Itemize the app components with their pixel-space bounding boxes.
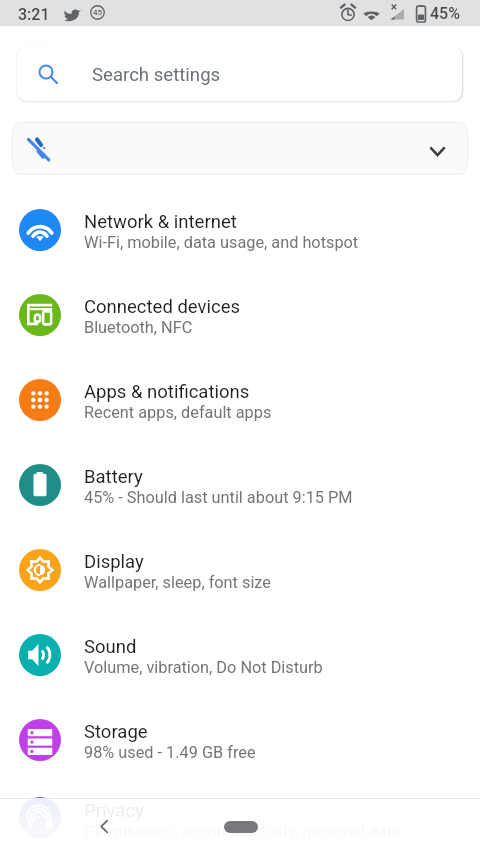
staticText: 3:21: [18, 5, 50, 24]
button[interactable]: Back: [88, 810, 120, 842]
staticText: Wallpaper, sleep, font size: [84, 573, 271, 592]
staticText: Battery: [84, 466, 143, 488]
staticText: Volume, vibration, Do Not Disturb: [84, 658, 323, 677]
button[interactable]: Apps & notifications: [0, 357, 480, 442]
button[interactable]: Privacy: [0, 782, 480, 854]
staticText: Permissions, account activity, personal …: [84, 822, 402, 841]
button[interactable]: Home: [224, 821, 258, 833]
staticText: Apps & notifications: [84, 381, 250, 403]
staticText: Network & internet: [84, 211, 237, 233]
staticText: Recent apps, default apps: [84, 403, 272, 422]
staticText: 98% used - 1.49 GB free: [84, 743, 256, 762]
button[interactable]: Display: [0, 527, 480, 612]
button[interactable]: Battery: [0, 442, 480, 527]
staticText: 45% - Should last until about 9:15 PM: [84, 488, 353, 507]
staticText: 45: [93, 8, 103, 17]
button[interactable]: Connected devices: [0, 272, 480, 357]
button[interactable]: Network & internet: [0, 187, 480, 272]
staticText: Display: [84, 551, 144, 573]
staticText: Connected devices: [84, 296, 241, 318]
button[interactable]: Sound: [0, 612, 480, 697]
staticText: Search settings: [92, 64, 221, 86]
staticText: 45%: [430, 4, 460, 23]
staticText: Sound: [84, 636, 137, 658]
staticText: Storage: [84, 721, 148, 743]
staticText: Wi-Fi, mobile, data usage, and hotspot: [84, 233, 359, 252]
button[interactable]: Suggestions: [12, 122, 468, 175]
staticText: Privacy: [84, 800, 144, 822]
button[interactable]: Storage: [0, 697, 480, 782]
staticText: Bluetooth, NFC: [84, 318, 193, 337]
button[interactable]: Search settings: [17, 47, 462, 101]
